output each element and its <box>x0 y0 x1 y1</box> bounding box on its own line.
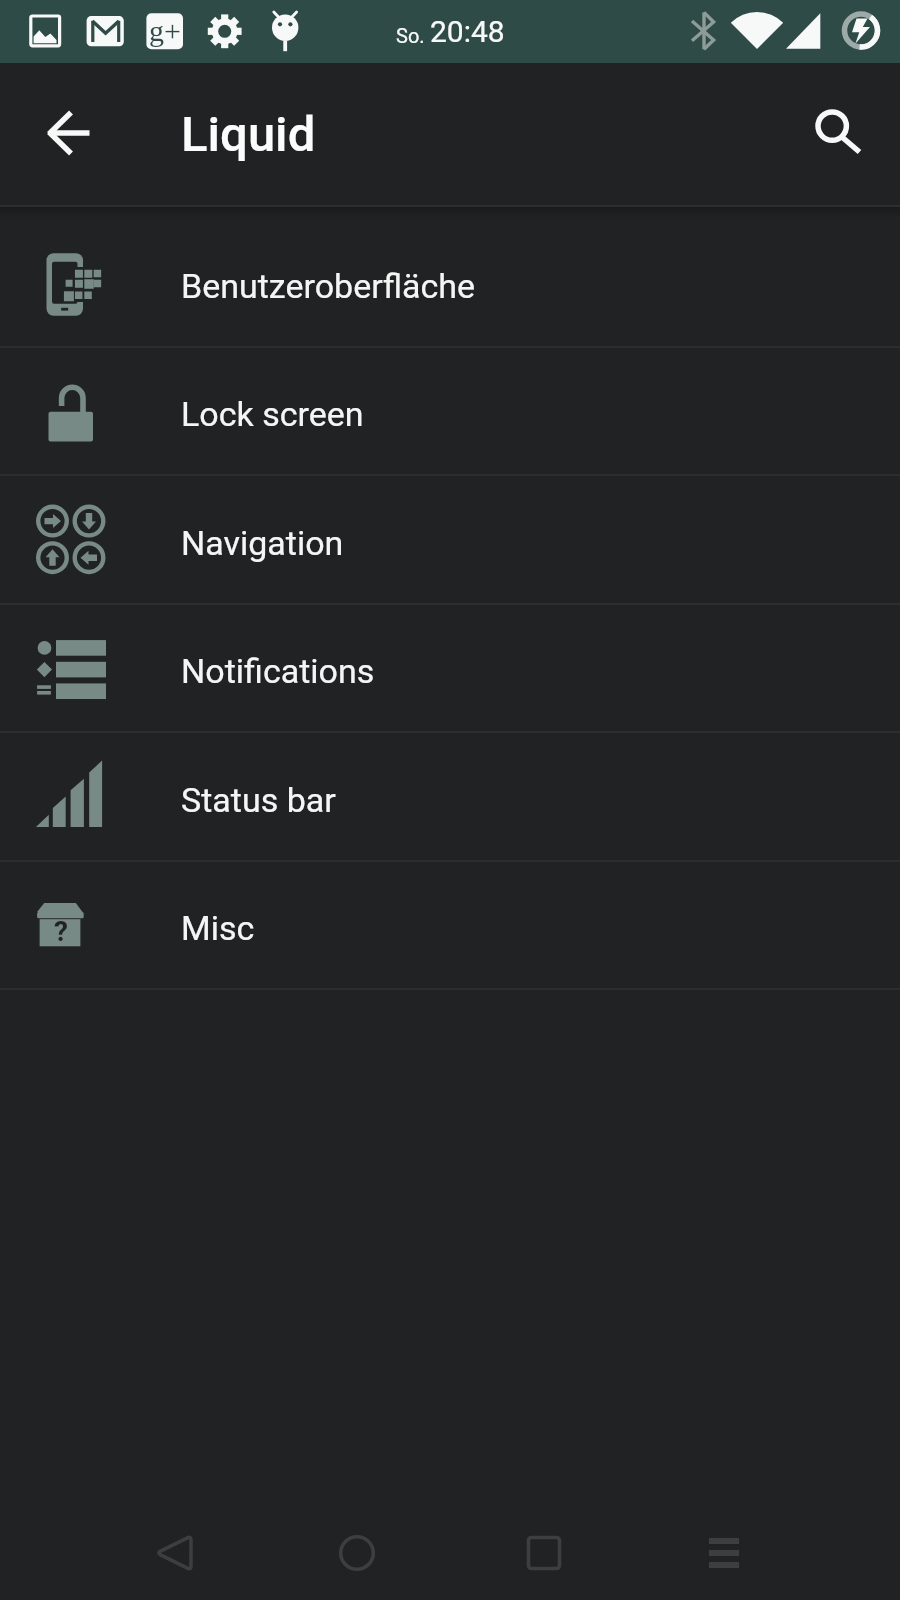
button[interactable]: Lock screen <box>0 348 900 474</box>
button[interactable] <box>313 1509 401 1597</box>
staticText: Liquid <box>181 106 316 163</box>
button[interactable]: Notifications <box>0 605 900 731</box>
button[interactable]: Benutzeroberfläche <box>0 219 900 346</box>
button[interactable] <box>500 1509 588 1597</box>
button[interactable]: ? <box>0 862 900 988</box>
staticText: 20:48 <box>430 14 505 49</box>
staticText: ? <box>54 915 68 948</box>
button[interactable] <box>680 1509 768 1597</box>
staticText: Benutzeroberfläche <box>181 266 476 306</box>
staticText: So. <box>396 24 430 47</box>
button[interactable] <box>26 90 114 178</box>
staticText: g+ <box>149 14 181 47</box>
button[interactable] <box>789 90 877 178</box>
button[interactable]: Status bar <box>0 733 900 860</box>
staticText: Lock screen <box>181 394 364 434</box>
staticText: Status bar <box>181 780 336 820</box>
staticText: Navigation <box>181 523 344 563</box>
staticText: Misc <box>181 908 255 948</box>
staticText: Notifications <box>181 651 375 691</box>
button[interactable] <box>130 1509 218 1597</box>
button[interactable]: Navigation <box>0 476 900 603</box>
